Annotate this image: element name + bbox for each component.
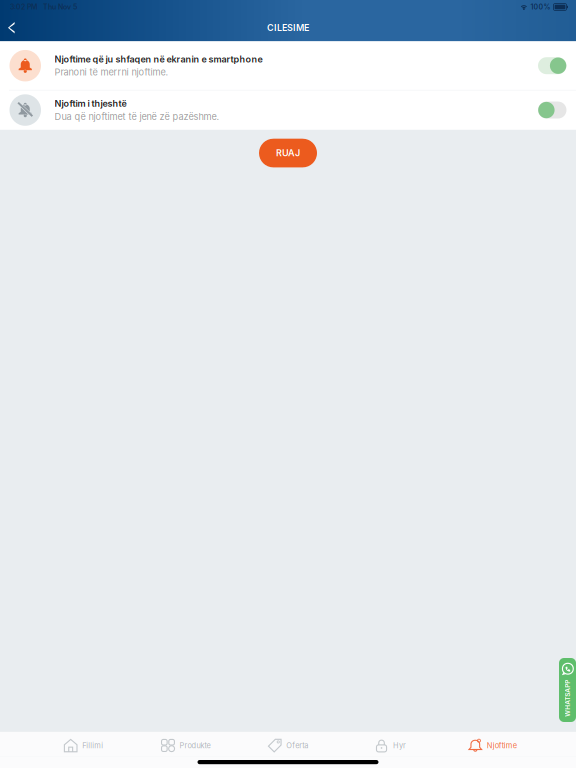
staticText: Njoftim i thjeshtë [54,98,126,109]
staticText: Produkte [179,741,210,750]
staticText: Pranoni të merrni njoftime. [54,67,168,78]
button[interactable]: Back [0,14,23,41]
button[interactable]: Hyr [339,734,441,757]
staticText: CILESIME [267,22,309,33]
staticText: Njoftime [487,741,517,750]
button[interactable]: Njoftime që ju shfaqen në ekranin e smar… [0,41,576,90]
staticText: Hyr [393,741,406,750]
staticText: 3:02 PM [10,3,37,11]
staticText: Oferta [286,741,308,750]
staticText: WHATSAPP [549,694,576,702]
button[interactable]: Produkte [135,734,237,757]
button[interactable]: RUAJ [259,139,317,167]
staticText: Dua që njoftimet të jenë zë pazëshme. [54,111,219,122]
staticText: Thu Nov 5 [43,3,77,11]
staticText: Njoftime që ju shfaqen në ekranin e smar… [54,54,262,65]
button[interactable]: Oferta [237,734,339,757]
staticText: 100% [530,3,550,11]
button[interactable]: Fillimi [32,734,135,757]
button[interactable]: Njoftim i thjeshtë [0,91,576,129]
staticText: RUAJ [276,148,300,159]
button[interactable]: Njoftime [441,734,544,757]
button[interactable]: WhatsApp [559,658,576,722]
staticText: Fillimi [82,741,103,750]
